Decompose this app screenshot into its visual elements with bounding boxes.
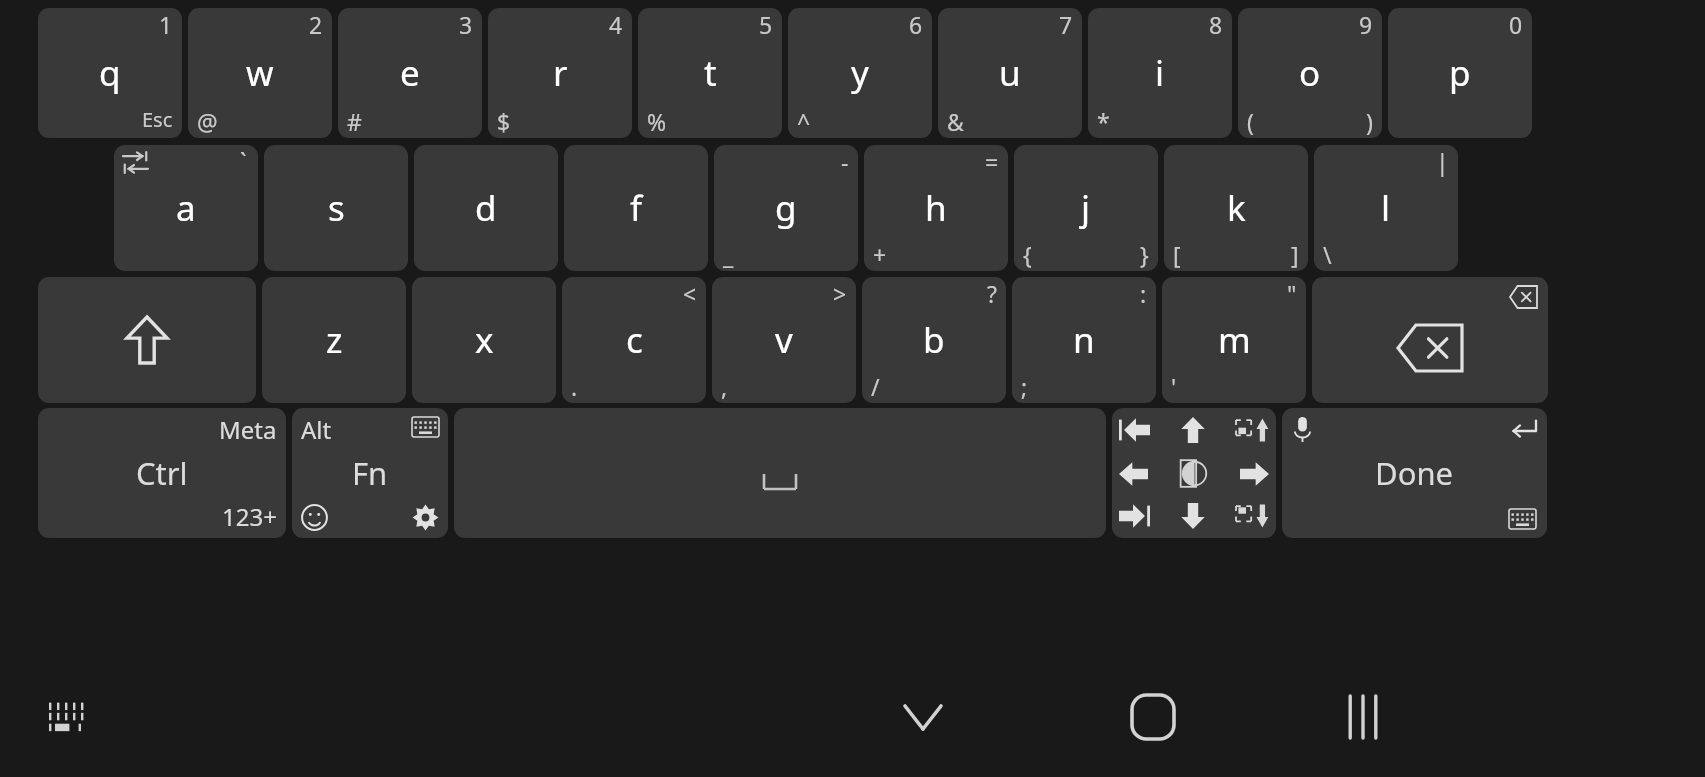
staticText: n <box>1073 316 1095 364</box>
button[interactable]: w <box>188 8 332 138</box>
button[interactable]: a <box>114 145 258 271</box>
staticText: j <box>1081 184 1091 232</box>
staticText: ) <box>1366 106 1373 137</box>
button[interactable]: Arrow keys <box>1112 408 1276 538</box>
button[interactable]: y <box>788 8 932 138</box>
button[interactable]: Home <box>1110 674 1196 760</box>
button[interactable]: q <box>38 8 182 138</box>
staticText: h <box>925 184 947 232</box>
button[interactable]: Space <box>454 408 1106 538</box>
staticText: 8 <box>1209 9 1223 40</box>
staticText: | <box>1436 146 1449 177</box>
button[interactable]: j <box>1014 145 1158 271</box>
button[interactable]: g <box>714 145 858 271</box>
button[interactable]: h <box>864 145 1008 271</box>
staticText: u <box>999 49 1021 97</box>
button[interactable]: t <box>638 8 782 138</box>
button[interactable]: Ctrl <box>38 408 286 538</box>
staticText: > <box>833 278 847 309</box>
button[interactable]: s <box>264 145 408 271</box>
staticText: 4 <box>609 9 623 40</box>
staticText: 7 <box>1059 9 1073 40</box>
staticText: c <box>626 316 643 364</box>
staticText: Fn <box>352 452 388 494</box>
button[interactable]: u <box>938 8 1082 138</box>
staticText: 9 <box>1359 9 1373 40</box>
button[interactable]: Recent apps <box>1320 674 1406 760</box>
button[interactable]: Fn <box>292 408 448 538</box>
button[interactable]: o <box>1238 8 1382 138</box>
staticText: [ <box>1173 239 1181 270</box>
staticText: o <box>1299 49 1321 97</box>
button[interactable]: p <box>1388 8 1532 138</box>
staticText: % <box>647 106 667 137</box>
staticText: / <box>871 371 880 402</box>
staticText: Meta <box>219 413 277 446</box>
staticText: # <box>347 106 362 137</box>
staticText: z <box>326 316 343 364</box>
staticText: k <box>1227 184 1246 232</box>
staticText: 3 <box>459 9 473 40</box>
button[interactable]: Hide keyboard <box>880 674 966 760</box>
staticText: ` <box>240 145 247 176</box>
staticText: i <box>1155 49 1165 97</box>
staticText: d <box>475 184 497 232</box>
staticText: Done <box>1375 452 1454 494</box>
staticText: 0 <box>1509 9 1523 40</box>
button[interactable]: Done <box>1282 408 1547 538</box>
staticText: q <box>99 49 121 97</box>
button[interactable]: v <box>712 277 856 403</box>
staticText: m <box>1218 316 1251 364</box>
button[interactable]: x <box>412 277 556 403</box>
button[interactable]: f <box>564 145 708 271</box>
staticText: Ctrl <box>136 452 188 494</box>
staticText: ' <box>1171 371 1177 402</box>
staticText: : <box>1140 278 1147 309</box>
staticText: g <box>775 184 797 232</box>
button[interactable]: Shift <box>38 277 256 403</box>
staticText: Alt <box>301 413 332 446</box>
staticText: , <box>721 371 728 402</box>
staticText: ] <box>1291 239 1299 270</box>
staticText: } <box>1140 239 1149 270</box>
button[interactable]: b <box>862 277 1006 403</box>
staticText: _ <box>723 239 734 270</box>
staticText: ? <box>987 278 997 309</box>
staticText: l <box>1381 184 1391 232</box>
staticText: < <box>683 278 697 309</box>
staticText: w <box>246 49 274 97</box>
staticText: x <box>475 316 494 364</box>
staticText: 6 <box>909 9 923 40</box>
staticText: r <box>553 49 568 97</box>
staticText: a <box>176 184 196 232</box>
staticText: 123+ <box>222 500 277 533</box>
button[interactable]: i <box>1088 8 1232 138</box>
staticText: \ <box>1323 239 1332 270</box>
staticText: Esc <box>142 106 173 133</box>
staticText: ( <box>1247 106 1254 137</box>
staticText: = <box>985 146 999 177</box>
button[interactable]: Backspace <box>1312 277 1548 403</box>
staticText: & <box>947 106 964 137</box>
staticText: 1 <box>159 9 173 40</box>
staticText: e <box>400 49 420 97</box>
button[interactable]: z <box>262 277 406 403</box>
staticText: y <box>851 49 869 97</box>
button[interactable]: r <box>488 8 632 138</box>
button[interactable]: c <box>562 277 706 403</box>
staticText: s <box>328 184 345 232</box>
button[interactable]: m <box>1162 277 1306 403</box>
staticText: 2 <box>309 9 323 40</box>
staticText: - <box>841 146 849 177</box>
staticText: 5 <box>759 9 773 40</box>
button[interactable]: d <box>414 145 558 271</box>
staticText: t <box>704 49 717 97</box>
button[interactable]: e <box>338 8 482 138</box>
button[interactable]: Show keyboard <box>28 678 106 756</box>
staticText: * <box>1097 106 1110 137</box>
staticText: + <box>873 239 887 270</box>
staticText: f <box>630 184 643 232</box>
button[interactable]: k <box>1164 145 1308 271</box>
button[interactable]: n <box>1012 277 1156 403</box>
button[interactable]: l <box>1314 145 1458 271</box>
